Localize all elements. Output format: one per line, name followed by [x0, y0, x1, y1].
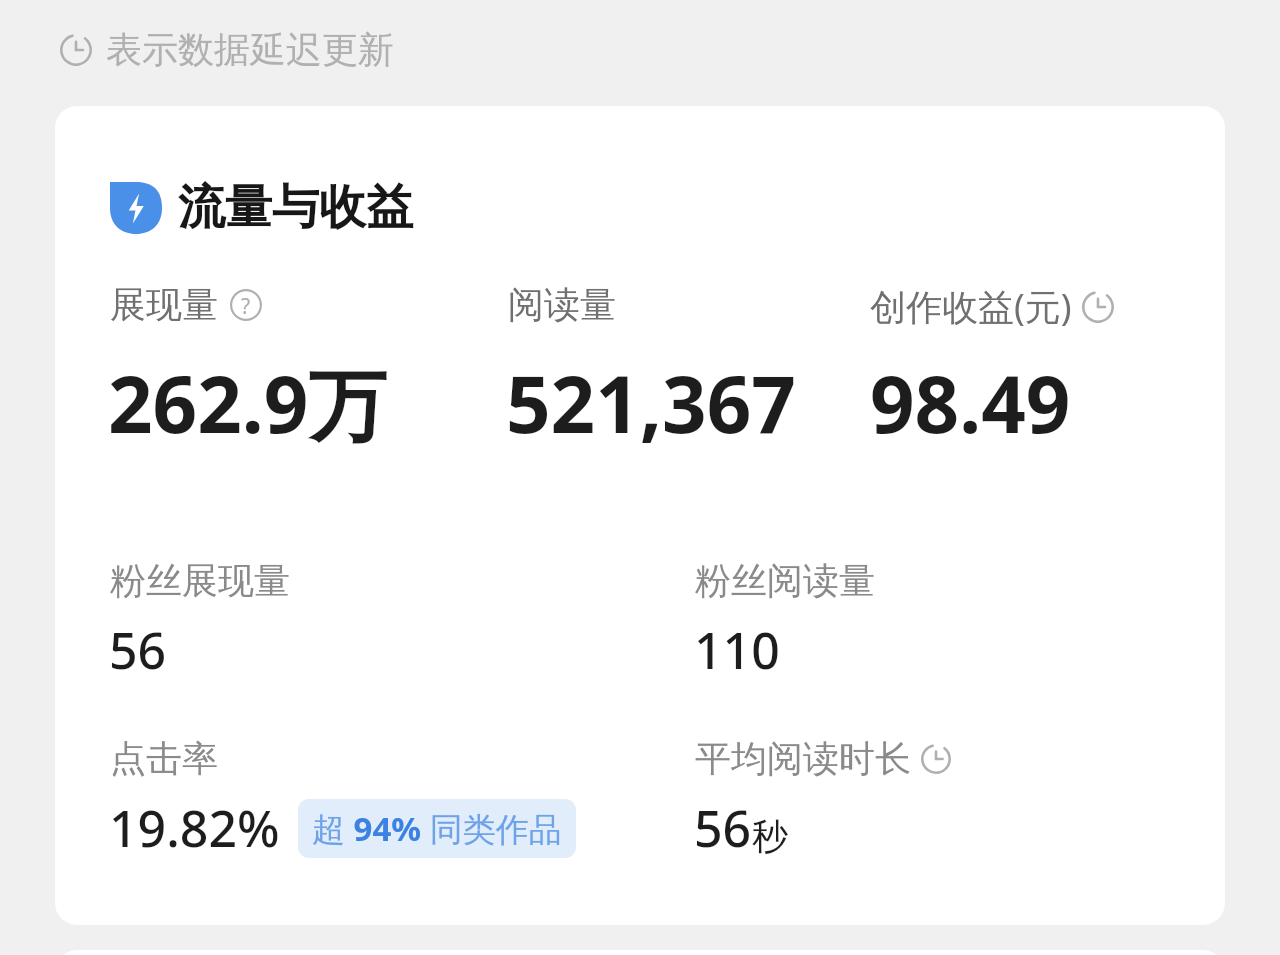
staticText: 521,367 — [506, 350, 796, 456]
staticText: 秒 — [752, 814, 788, 859]
staticText: 阅读量 — [508, 282, 616, 327]
staticText: 展现量 — [110, 282, 218, 327]
staticText: 粉丝展现量 — [110, 558, 290, 603]
other: 说明 — [230, 289, 262, 321]
staticText: 98.49 — [870, 350, 1071, 456]
staticText: 56 — [694, 794, 752, 862]
staticText: 平均阅读时长 — [695, 736, 911, 781]
staticText: 110 — [694, 616, 780, 684]
staticText: 点击率 — [110, 736, 218, 781]
button[interactable]: 流量与收益 — [55, 106, 1225, 925]
staticText: 创作收益(元) — [870, 282, 1072, 331]
staticText: 流量与收益 — [178, 178, 413, 237]
staticText: 262.9万 — [108, 350, 387, 457]
staticText: 表示数据延迟更新 — [106, 27, 394, 72]
staticText: 粉丝阅读量 — [695, 558, 875, 603]
staticText: ? — [241, 291, 251, 320]
staticText: 19.82% — [109, 794, 280, 862]
staticText: 超 94% 同类作品 — [312, 806, 562, 851]
button[interactable]: 表示数据延迟更新 — [58, 25, 396, 74]
button[interactable]: 超 94% 同类作品 — [298, 799, 576, 858]
staticText: 56 — [109, 616, 167, 684]
